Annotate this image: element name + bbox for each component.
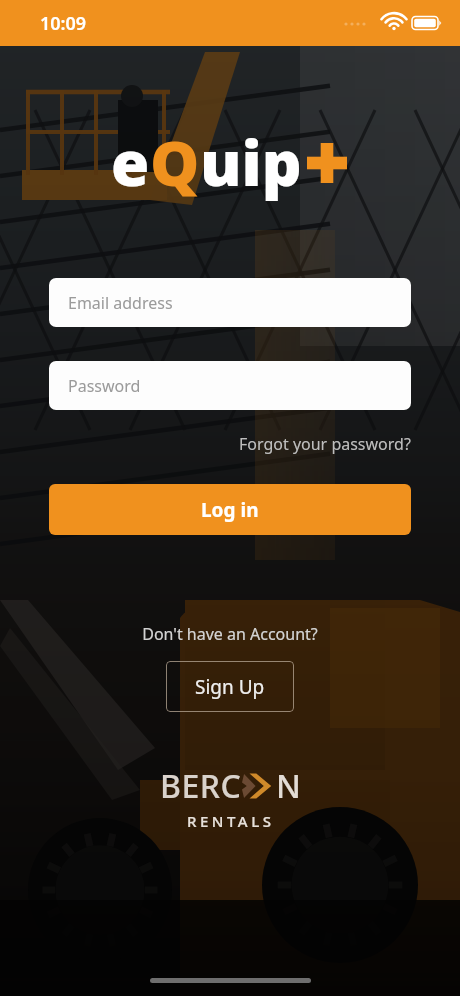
button[interactable]: Log in — [49, 484, 411, 535]
staticText: Don't have an Account? — [142, 623, 318, 645]
staticText: 10:09 — [40, 11, 87, 36]
staticText: uip — [200, 120, 302, 204]
button[interactable]: Forgot your password? — [239, 430, 411, 458]
staticText: Log in — [201, 497, 259, 523]
staticText: Email address — [68, 292, 173, 314]
button[interactable]: Sign Up — [166, 661, 294, 712]
staticText: BERC — [160, 764, 242, 808]
staticText: RENTALS — [187, 811, 275, 831]
staticText: Sign Up — [195, 674, 265, 700]
staticText: N — [276, 764, 301, 808]
staticText: e — [111, 120, 150, 204]
staticText: Forgot your password? — [239, 433, 411, 455]
button[interactable]: Email address — [49, 278, 411, 327]
staticText: Password — [68, 375, 141, 397]
button[interactable]: Password — [49, 361, 411, 410]
staticText: Q — [150, 120, 200, 204]
